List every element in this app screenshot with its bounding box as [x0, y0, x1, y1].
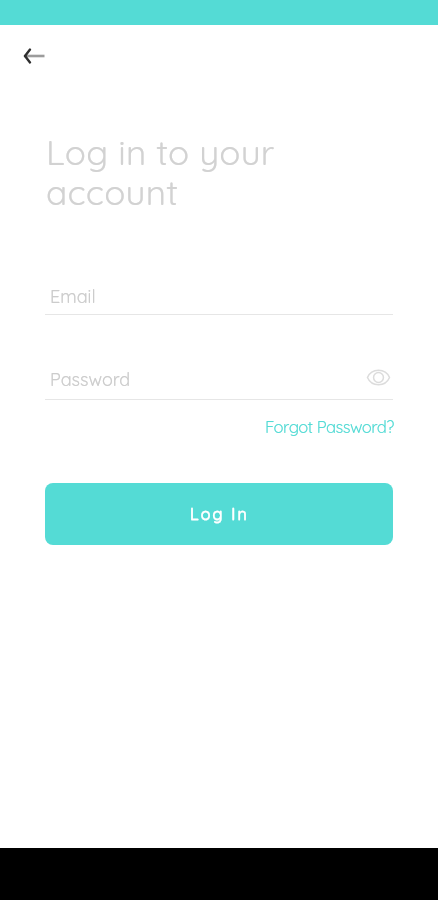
button[interactable]: Email	[45, 279, 393, 315]
button[interactable]: Forgot Password?	[265, 412, 394, 433]
staticText: Log in to your account	[46, 130, 275, 214]
button[interactable]: Back	[11, 34, 55, 78]
button[interactable]: Password	[45, 363, 363, 386]
button[interactable]: Log In	[45, 483, 393, 545]
staticText: Log In	[190, 504, 249, 524]
button[interactable]: Show password	[363, 362, 393, 392]
staticText: Email	[50, 285, 96, 308]
